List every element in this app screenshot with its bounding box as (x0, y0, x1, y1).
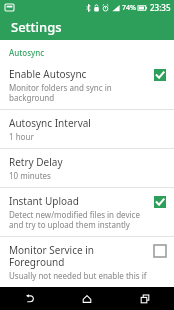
button[interactable]: Enabled checkbox (154, 69, 166, 81)
staticText: Enable Autosync (9, 67, 87, 81)
button[interactable]: Enabled checkbox (154, 196, 166, 208)
staticText: 1 hour (9, 131, 34, 142)
button[interactable]: Disabled checkbox (154, 245, 166, 257)
button[interactable]: Instant Upload (0, 188, 174, 236)
button[interactable]: Recent apps (116, 287, 174, 310)
button[interactable]: Back (0, 287, 58, 310)
staticText: Usually not needed but enable this if in… (9, 270, 148, 281)
button[interactable]: Monitor Service in Foreground (0, 237, 174, 287)
staticText: Monitor Service in Foreground (9, 243, 148, 269)
staticText: Autosync (9, 47, 45, 58)
button[interactable]: Autosync Interval (0, 110, 174, 148)
staticText: Settings (11, 18, 62, 36)
staticText: Monitor folders and sync in background (9, 82, 148, 103)
staticText: Instant Upload (9, 194, 79, 208)
button[interactable]: Home (58, 287, 116, 310)
button[interactable]: Retry Delay (0, 149, 174, 187)
staticText: 74% (122, 3, 136, 13)
staticText: Autosync Interval (9, 116, 91, 130)
staticText: Detect new/modified files in device and … (9, 209, 148, 230)
staticText: Retry Delay (9, 155, 63, 169)
staticText: 10 minutes (9, 170, 51, 181)
button[interactable]: Enable Autosync (0, 61, 174, 109)
staticText: 23:35 (150, 2, 171, 13)
